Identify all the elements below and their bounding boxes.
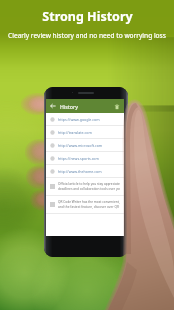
staticText: QR Code Writer has the most convenient, … xyxy=(58,200,120,204)
staticText: http://www.microsoft.com xyxy=(58,143,103,148)
button[interactable]: https://news.sports.com xyxy=(46,152,124,164)
staticText: and the fastest feature, discover over Q… xyxy=(58,205,120,209)
button[interactable]: http://translate.com xyxy=(46,126,124,138)
button[interactable]: Back xyxy=(49,102,57,110)
button[interactable]: QR Code Writer has the most convenient, … xyxy=(46,196,124,213)
staticText: deadlines and collaboration tools over y… xyxy=(58,187,120,191)
button[interactable]: https://www.google.com xyxy=(46,113,124,125)
button[interactable]: http://www.microsoft.com xyxy=(46,139,124,151)
staticText: http://translate.com xyxy=(58,130,92,135)
staticText: https://www.google.com xyxy=(58,117,100,122)
staticText: Official article to help you stay apprec… xyxy=(58,182,120,186)
staticText: Clearly review history and no need to wo… xyxy=(8,31,166,40)
staticText: http://www.thehome.com xyxy=(58,169,102,174)
button[interactable]: Official article to help you stay apprec… xyxy=(46,178,124,195)
staticText: Strong History xyxy=(42,8,133,25)
button[interactable]: http://www.thehome.com xyxy=(46,165,124,177)
staticText: https://news.sports.com xyxy=(58,156,99,161)
staticText: History xyxy=(60,103,78,110)
button[interactable]: Delete history xyxy=(112,102,121,111)
